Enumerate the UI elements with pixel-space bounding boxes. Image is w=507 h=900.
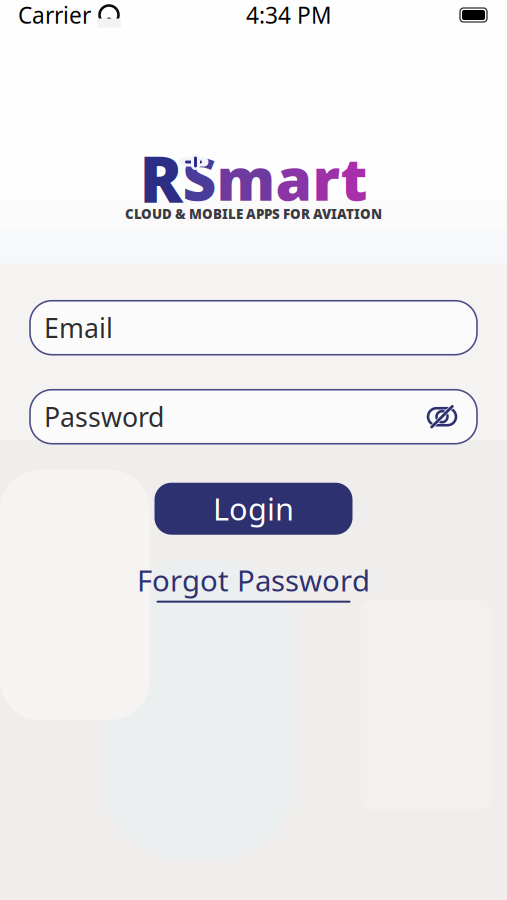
staticText: Carrier [18, 0, 91, 30]
button[interactable]: Forgot Password [137, 561, 370, 603]
button[interactable]: Password [30, 390, 415, 444]
staticText: 4:34 PM [246, 0, 332, 30]
button[interactable]: Login [154, 483, 352, 535]
staticText: CLOUD & MOBILE APPS FOR AVIATION [125, 205, 382, 223]
staticText: Email [44, 310, 113, 345]
staticText: Forgot Password [137, 561, 370, 600]
button[interactable]: Show password [415, 390, 469, 444]
staticText: R [139, 135, 182, 220]
button[interactable]: Email [30, 301, 477, 355]
staticText: t [340, 139, 367, 217]
staticText: Login [213, 488, 294, 529]
staticText: r [312, 139, 340, 217]
staticText: Password [44, 399, 164, 434]
staticText: S [182, 139, 216, 217]
staticText: m [216, 139, 275, 217]
staticText: a [275, 139, 312, 217]
